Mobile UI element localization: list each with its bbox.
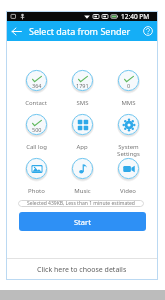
button[interactable]: App	[59, 113, 105, 157]
staticText: Photo	[28, 187, 45, 195]
staticText: Video	[120, 187, 136, 195]
staticText: 0	[127, 82, 131, 89]
staticText: Call log	[26, 143, 47, 151]
button[interactable]: Start	[19, 212, 146, 231]
staticText: 12:40 PM	[121, 12, 150, 21]
staticText: Start	[74, 217, 91, 227]
button[interactable]: Video	[105, 157, 151, 201]
staticText: App	[76, 143, 88, 151]
staticText: MMS	[121, 99, 136, 107]
button[interactable]: 500	[13, 113, 59, 157]
button[interactable]: Back	[6, 21, 26, 41]
staticText: Click here to choose details	[37, 265, 127, 275]
button[interactable]: 1791	[59, 69, 105, 113]
staticText: 364	[32, 82, 42, 89]
staticText: 500	[32, 126, 42, 133]
staticText: Select data from Sender	[29, 25, 131, 37]
staticText: Contact	[25, 99, 47, 107]
button[interactable]: 364	[13, 69, 59, 113]
button[interactable]: Help	[138, 21, 158, 41]
button[interactable]: 0	[105, 69, 151, 113]
staticText: SMS	[76, 99, 89, 107]
button[interactable]: Click here to choose details	[6, 259, 158, 280]
staticText: System Settings	[117, 143, 140, 157]
staticText: 1791	[76, 82, 89, 89]
button[interactable]: Photo	[13, 157, 59, 201]
button[interactable]: System Settings	[105, 113, 151, 157]
staticText: Selected 439KB, Less than 1 minute estim…	[27, 200, 135, 207]
button[interactable]: Music	[59, 157, 105, 201]
staticText: Music	[74, 187, 91, 195]
